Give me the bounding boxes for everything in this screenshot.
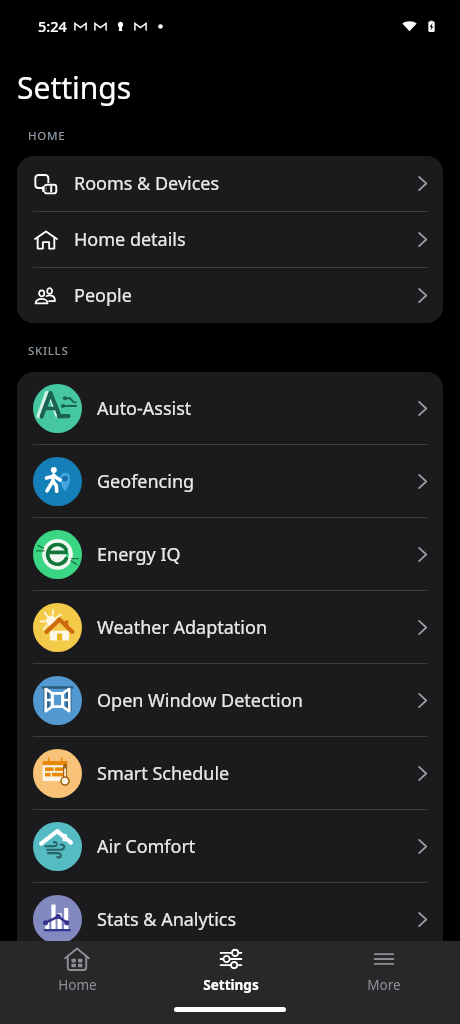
staticText: Smart Schedule — [97, 761, 230, 786]
button[interactable]: Rooms & Devices — [17, 156, 443, 211]
staticText: Geofencing — [97, 469, 195, 494]
staticText: Rooms & Devices — [74, 171, 220, 196]
button[interactable]: Weather Adaptation — [17, 591, 443, 663]
staticText: SKILLS — [28, 343, 69, 359]
button[interactable]: People — [17, 268, 443, 323]
staticText: Open Window Detection — [97, 688, 303, 713]
button[interactable]: Geofencing — [17, 445, 443, 517]
staticText: People — [74, 283, 132, 308]
staticText: Stats & Analytics — [97, 907, 237, 932]
staticText: Weather Adaptation — [97, 615, 268, 640]
staticText: Settings — [203, 976, 259, 994]
button[interactable]: Auto-Assist — [17, 372, 443, 444]
staticText: HOME — [28, 128, 66, 144]
button[interactable]: Home details — [17, 212, 443, 267]
staticText: Home details — [74, 227, 186, 252]
button[interactable]: Air Comfort — [17, 810, 443, 882]
button[interactable]: Stats & Analytics — [17, 883, 443, 955]
button[interactable]: Open Window Detection — [17, 664, 443, 736]
staticText: 5:24 — [38, 16, 67, 36]
staticText: Settings — [17, 67, 132, 108]
button[interactable]: More — [307, 946, 460, 994]
staticText: Home — [58, 976, 97, 994]
button[interactable]: Smart Schedule — [17, 737, 443, 809]
staticText: More — [367, 976, 401, 994]
button[interactable]: Energy IQ — [17, 518, 443, 590]
button[interactable]: Settings — [154, 946, 307, 994]
staticText: Auto-Assist — [97, 396, 192, 421]
staticText: Energy IQ — [97, 542, 181, 567]
staticText: Air Comfort — [97, 834, 196, 859]
button[interactable]: Home — [0, 946, 154, 994]
